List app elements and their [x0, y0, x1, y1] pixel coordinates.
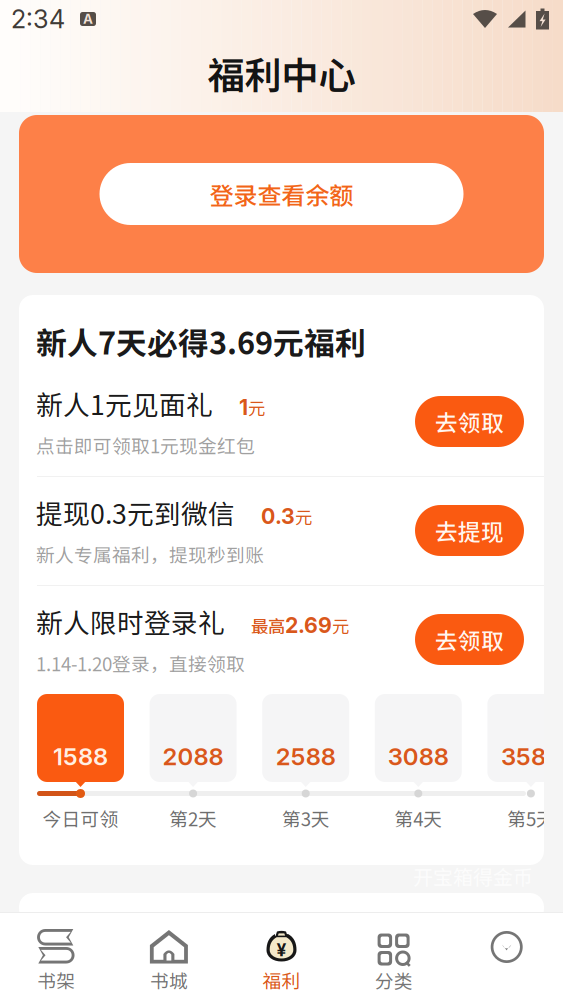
- button[interactable]: 福利: [225, 912, 338, 1002]
- staticText: 1: [239, 394, 248, 420]
- staticText: 2:34: [11, 4, 65, 34]
- button[interactable]: 去提现: [415, 505, 524, 556]
- staticText: 2088: [163, 742, 224, 771]
- button[interactable]: 登录查看余额: [19, 115, 544, 273]
- staticText: 第3天: [282, 804, 330, 831]
- staticText: 第2天: [169, 804, 217, 831]
- staticText: 去领取: [435, 405, 504, 438]
- button[interactable]: 去领取: [415, 614, 524, 665]
- button[interactable]: 书城: [113, 912, 225, 1002]
- staticText: 登录查看余额: [209, 177, 353, 211]
- staticText: 0.3: [261, 503, 295, 529]
- staticText: 2588: [276, 742, 336, 771]
- staticText: 点击即可领取1元现金红包: [36, 432, 255, 459]
- staticText: ¥: [276, 939, 286, 960]
- staticText: 新人7天必得3.69元福利: [36, 319, 366, 363]
- staticText: 元: [295, 504, 312, 529]
- staticText: 第5天: [507, 804, 555, 831]
- staticText: 新人限时登录礼: [36, 602, 225, 641]
- staticText: 新人1元见面礼: [36, 384, 213, 423]
- staticText: 福利: [262, 966, 300, 993]
- staticText: 书架: [37, 966, 75, 993]
- button[interactable]: 去领取: [415, 396, 524, 447]
- button[interactable]: 书架: [0, 912, 113, 1002]
- staticText: 2.69: [285, 612, 332, 638]
- staticText: 1588: [53, 742, 108, 771]
- staticText: 3088: [388, 742, 449, 771]
- staticText: 1.14-1.20登录，直接领取: [36, 650, 245, 677]
- staticText: A: [83, 11, 93, 27]
- staticText: 福利中心: [207, 46, 355, 100]
- button[interactable]: More: [450, 912, 563, 1002]
- staticText: 书城: [150, 966, 188, 993]
- staticText: 元: [248, 395, 265, 420]
- staticText: 最高: [251, 613, 285, 638]
- staticText: 提现0.3元到微信: [36, 493, 235, 532]
- staticText: 分类: [375, 966, 413, 993]
- button[interactable]: 分类: [338, 912, 450, 1002]
- staticText: 去提现: [435, 514, 504, 547]
- staticText: 3588: [501, 742, 561, 771]
- staticText: 开宝箱得金币: [413, 861, 533, 890]
- staticText: 今日可领: [42, 804, 118, 831]
- staticText: 第4天: [394, 804, 442, 831]
- staticText: 去领取: [435, 623, 504, 656]
- staticText: 新人专属福利，提现秒到账: [36, 541, 264, 568]
- staticText: 元: [332, 613, 349, 638]
